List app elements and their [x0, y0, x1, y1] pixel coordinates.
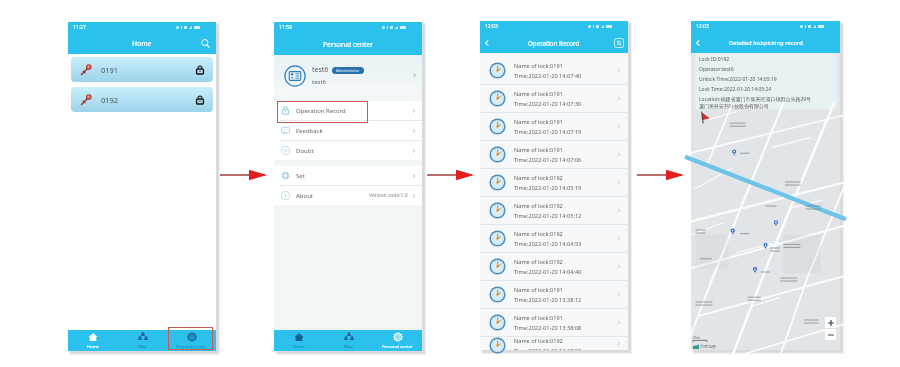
- staticText: Time:2022-01-20 14:04:40: [514, 268, 582, 276]
- button[interactable]: Name of lock:0192: [480, 253, 628, 280]
- button[interactable]: Name of lock:0191: [480, 309, 628, 336]
- staticText: Time:2022-01-20 14:07:40: [514, 72, 582, 80]
- button[interactable]: Name of lock:0192: [480, 337, 628, 350]
- staticText: Map: [344, 344, 353, 350]
- button[interactable]: Name of lock:0191: [480, 281, 628, 308]
- staticText: 厦门美科安邦科技股份有限公司: [699, 103, 769, 109]
- staticText: Home: [132, 39, 152, 48]
- staticText: Name of lock:0192: [514, 258, 563, 266]
- staticText: Personal center: [176, 344, 207, 350]
- staticText: Name of lock:0192: [514, 337, 563, 345]
- staticText: Detailed lockpicking record: [729, 39, 803, 47]
- staticText: Time:2022-01-20 14:07:19: [514, 128, 582, 136]
- button[interactable]: Name of lock:0191: [480, 85, 628, 112]
- staticText: Time:2022-01-20 13:37:50: [514, 347, 582, 350]
- staticText: Location:福建省厦门市集美区灞口镇田山头路29号: [699, 96, 812, 103]
- staticText: 0191: [101, 65, 119, 75]
- staticText: Name of lock:0191: [514, 286, 563, 294]
- button[interactable]: Zoom out: [825, 329, 836, 340]
- button[interactable]: Name of lock:0191: [480, 141, 628, 168]
- staticText: Name of lock:0191: [514, 314, 563, 322]
- button[interactable]: Operation Record: [274, 101, 422, 120]
- button[interactable]: Home: [274, 330, 324, 351]
- staticText: Lock Time:2022-01-20 14:05:24: [699, 86, 772, 93]
- button[interactable]: Search: [199, 37, 212, 50]
- staticText: Name of lock:0192: [514, 230, 563, 238]
- staticText: 0192: [101, 95, 119, 105]
- button[interactable]: Name of lock:0192: [480, 197, 628, 224]
- button[interactable]: About: [274, 186, 422, 205]
- button[interactable]: Name of lock:0192: [480, 169, 628, 196]
- button[interactable]: test6: [274, 55, 422, 96]
- staticText: Home: [293, 344, 305, 350]
- button[interactable]: 0191: [71, 57, 213, 82]
- button[interactable]: 0192: [71, 87, 213, 112]
- button[interactable]: Personal center: [167, 330, 216, 351]
- staticText: About: [296, 192, 314, 200]
- button[interactable]: Back: [691, 36, 705, 50]
- staticText: Personal center: [382, 344, 413, 350]
- button[interactable]: Back: [480, 36, 494, 50]
- staticText: Administrator: [336, 68, 360, 73]
- button[interactable]: Feedback: [274, 121, 422, 140]
- staticText: test6: [312, 78, 327, 86]
- staticText: 11:27: [73, 24, 86, 31]
- button[interactable]: Map: [324, 330, 373, 351]
- staticText: Name of lock:0191: [514, 118, 563, 126]
- button[interactable]: Personal center: [373, 330, 422, 351]
- staticText: 百度地图: [700, 344, 716, 349]
- staticText: Name of lock:0191: [514, 62, 563, 70]
- staticText: Time:2022-01-20 14:05:12: [514, 212, 582, 220]
- button[interactable]: Doubt: [274, 141, 422, 160]
- staticText: Name of lock:0192: [514, 202, 563, 210]
- staticText: Time:2022-01-20 14:04:53: [514, 240, 582, 248]
- staticText: Feedback: [296, 127, 323, 135]
- staticText: Doubt: [296, 147, 314, 155]
- staticText: Set: [296, 172, 305, 180]
- staticText: Operator:test6: [699, 66, 734, 73]
- button[interactable]: Name of lock:0191: [480, 57, 628, 84]
- staticText: Name of lock:0192: [514, 174, 563, 182]
- button[interactable]: Map: [118, 330, 167, 351]
- staticText: Time:2022-01-20 14:05:19: [514, 184, 582, 192]
- staticText: Operation Record: [528, 39, 580, 47]
- button[interactable]: Sort: [614, 38, 624, 48]
- staticText: Unlock Time:2022-01-20 14:05:19: [699, 76, 777, 83]
- button[interactable]: Name of lock:0192: [480, 225, 628, 252]
- staticText: Personal center: [323, 40, 374, 49]
- staticText: Time:2022-01-20 13:38:08: [514, 324, 582, 332]
- staticText: Version code:1.0: [369, 192, 408, 199]
- staticText: 12:03: [485, 23, 498, 30]
- staticText: Map: [138, 344, 147, 350]
- staticText: test6: [312, 65, 329, 75]
- button[interactable]: Zoom in: [825, 317, 836, 328]
- button[interactable]: Home: [68, 330, 118, 351]
- staticText: Home: [87, 344, 99, 350]
- staticText: Name of lock:0191: [514, 90, 563, 98]
- staticText: Operation Record: [296, 107, 346, 115]
- staticText: Time:2022-01-20 14:07:06: [514, 156, 582, 164]
- staticText: 11:59: [279, 24, 292, 31]
- staticText: Time:2022-01-20 13:38:12: [514, 296, 582, 304]
- button[interactable]: Name of lock:0191: [480, 113, 628, 140]
- staticText: 12:03: [696, 23, 709, 30]
- staticText: Name of lock:0191: [514, 146, 563, 154]
- staticText: Time:2022-01-20 14:07:30: [514, 100, 582, 108]
- staticText: Lock ID:0192: [699, 56, 730, 63]
- button[interactable]: Set: [274, 166, 422, 185]
- staticText: 25m: [693, 335, 701, 340]
